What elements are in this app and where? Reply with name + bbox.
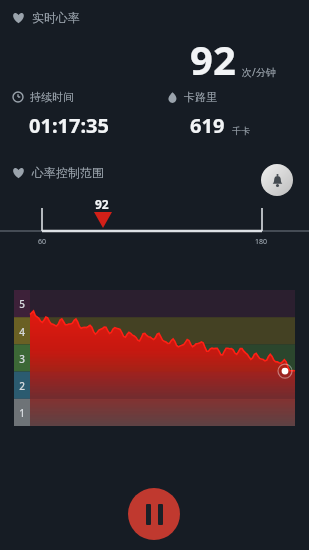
staticText: 01:17:35 — [29, 112, 109, 139]
staticText: 60 — [38, 237, 47, 247]
staticText: 619 — [190, 112, 225, 139]
staticText: 92 — [190, 32, 236, 86]
staticText: 实时心率 — [32, 10, 80, 25]
staticText: 180 — [255, 237, 268, 247]
staticText: 千卡 — [232, 125, 250, 136]
button[interactable]: Alarm settings — [261, 164, 293, 196]
staticText: 2 — [19, 379, 25, 393]
staticText: 1 — [19, 406, 25, 420]
button[interactable]: Pause workout — [128, 488, 180, 540]
staticText: 卡路里 — [184, 90, 217, 104]
staticText: 心率控制范围 — [32, 165, 104, 180]
staticText: 5 — [19, 297, 25, 311]
staticText: 持续时间 — [30, 90, 74, 104]
staticText: 3 — [19, 352, 25, 366]
staticText: 92 — [95, 196, 109, 212]
staticText: 次/分钟 — [242, 65, 276, 79]
staticText: 4 — [19, 325, 25, 339]
button[interactable]: Heart rate range — [0, 196, 309, 246]
